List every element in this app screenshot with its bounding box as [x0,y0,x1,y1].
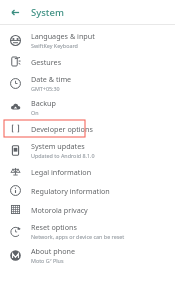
button[interactable]: Reset options [0,219,175,243]
staticText: Motorola privacy [31,205,88,215]
staticText: SwiftKey Keyboard [31,42,78,49]
staticText: Gestures [31,57,62,67]
button[interactable]: Back [7,4,24,21]
button[interactable]: Languages & input [0,28,175,52]
button[interactable]: Gestures [0,52,175,71]
staticText: Updated to Android 8.1.0 [31,152,95,159]
staticText: Legal information [31,167,92,177]
staticText: Regulatory information [31,186,110,196]
button[interactable]: Motorola privacy [0,200,175,219]
button[interactable]: System updates [0,138,175,162]
button[interactable]: About phone [0,243,175,267]
staticText: System updates [31,141,85,151]
staticText: Reset options [31,222,77,232]
button[interactable]: Developer options [0,119,175,138]
staticText: GMT+05:30 [31,85,60,92]
staticText: Moto G⁷ Plus [31,257,64,264]
staticText: On [31,109,39,116]
button[interactable]: Legal information [0,162,175,181]
staticText: Date & time [31,74,72,84]
staticText: System [31,6,64,19]
button[interactable]: Backup [0,95,175,119]
staticText: Backup [31,98,56,108]
button[interactable]: Regulatory information [0,181,175,200]
staticText: Languages & input [31,31,95,41]
staticText: Developer options [31,124,93,134]
staticText: About phone [31,246,75,256]
staticText: Network, apps or device can be reset [31,233,125,240]
button[interactable]: Date & time [0,71,175,95]
